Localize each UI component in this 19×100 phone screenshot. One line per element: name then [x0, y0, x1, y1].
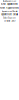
- staticText: Appointment Details: [1, 10, 17, 12]
- staticText: Appointment Details: [1, 13, 18, 16]
- staticText: 13 Mar 2017: [3, 20, 15, 22]
- staticText: New Appointment: [2, 0, 16, 2]
- staticText: New Appointment: [0, 6, 19, 9]
- staticText: New Appointment: [1, 3, 18, 5]
- staticText: Select Segment: [3, 17, 16, 19]
